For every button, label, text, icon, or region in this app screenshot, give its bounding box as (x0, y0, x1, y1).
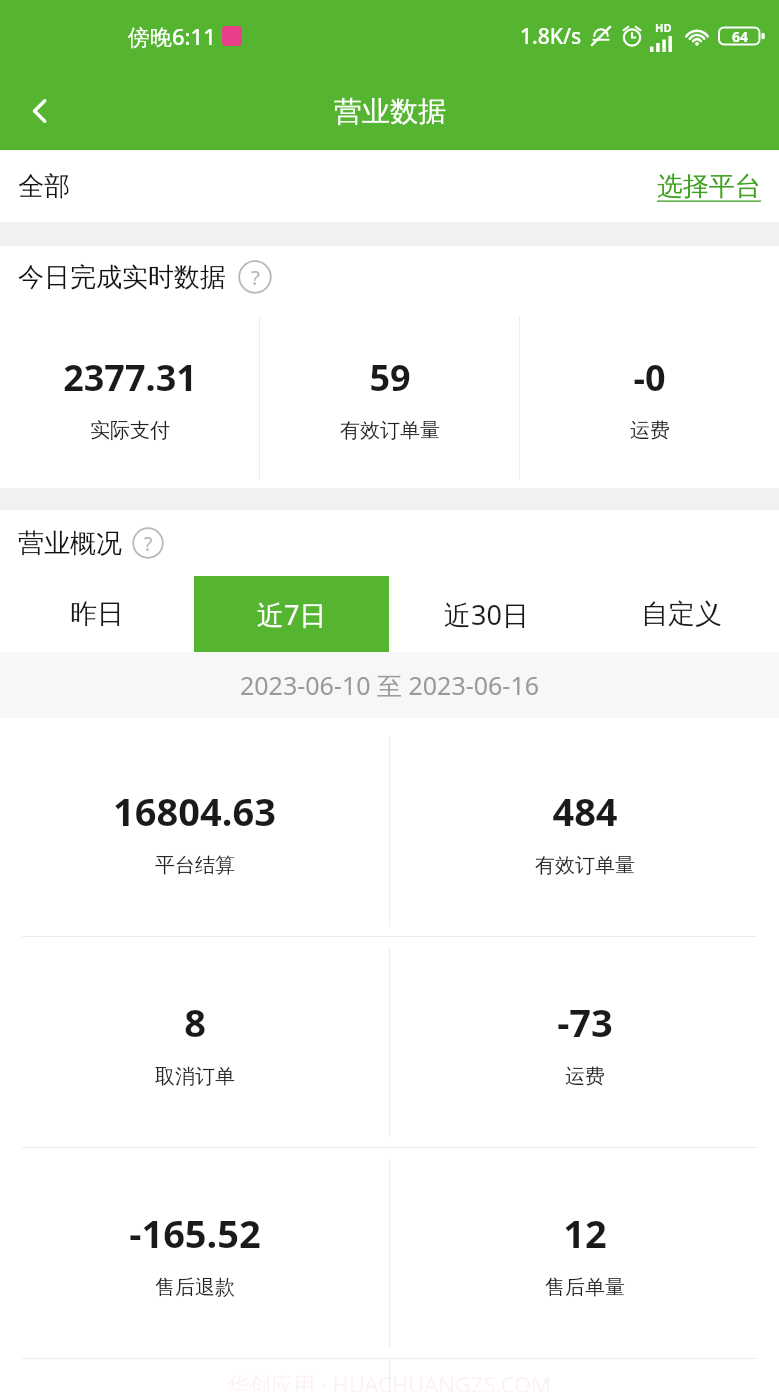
staticText: 1.8K/s (520, 22, 582, 51)
staticText: -73 (557, 996, 613, 1048)
staticText: 售后退款 (155, 1275, 235, 1300)
staticText: 营业数据 (334, 94, 446, 129)
staticText: 华创应用 · HUACHUANGZS.COM (227, 1369, 552, 1392)
staticText: 2023-06-10 至 2023-06-16 (240, 668, 540, 702)
staticText: 营业概况 (18, 527, 122, 560)
staticText: 全部 (18, 170, 70, 203)
button[interactable]: 近30日 (389, 576, 584, 652)
staticText: 今日完成实时数据 (18, 261, 226, 294)
staticText: 59 (369, 353, 411, 402)
staticText: 有效订单量 (340, 418, 440, 443)
staticText: 运费 (565, 1064, 605, 1089)
button[interactable]: Help (132, 527, 164, 559)
staticText: 实际支付 (90, 418, 170, 443)
staticText: 傍晚6:11 (128, 21, 216, 51)
button[interactable]: Help (238, 260, 272, 294)
staticText: 选择平台 (657, 170, 761, 203)
staticText: 平台结算 (155, 853, 235, 878)
staticText: 自定义 (641, 597, 722, 631)
staticText: 有效订单量 (535, 853, 635, 878)
staticText: ? (144, 530, 153, 556)
button[interactable]: Back (0, 72, 80, 150)
staticText: 484 (552, 785, 618, 837)
button[interactable]: 近7日 (194, 576, 389, 652)
staticText: 昨日 (70, 597, 124, 631)
staticText: 2377.31 (63, 353, 197, 402)
staticText: ? (251, 263, 260, 291)
staticText: 近7日 (257, 596, 327, 633)
staticText: 64 (732, 27, 749, 46)
staticText: 12 (563, 1207, 607, 1259)
staticText: 运费 (630, 418, 670, 443)
staticText: HD (655, 20, 672, 35)
button[interactable]: 全部 (0, 150, 779, 222)
staticText: 16804.63 (113, 785, 276, 837)
staticText: 取消订单 (155, 1064, 235, 1089)
button[interactable]: 选择平台 (657, 150, 779, 222)
staticText: 售后单量 (545, 1275, 625, 1300)
staticText: -165.52 (129, 1207, 261, 1259)
staticText: -0 (633, 353, 666, 402)
staticText: 近30日 (444, 596, 529, 633)
button[interactable]: 昨日 (0, 576, 194, 652)
staticText: 8 (184, 996, 206, 1048)
button[interactable]: 自定义 (584, 576, 779, 652)
